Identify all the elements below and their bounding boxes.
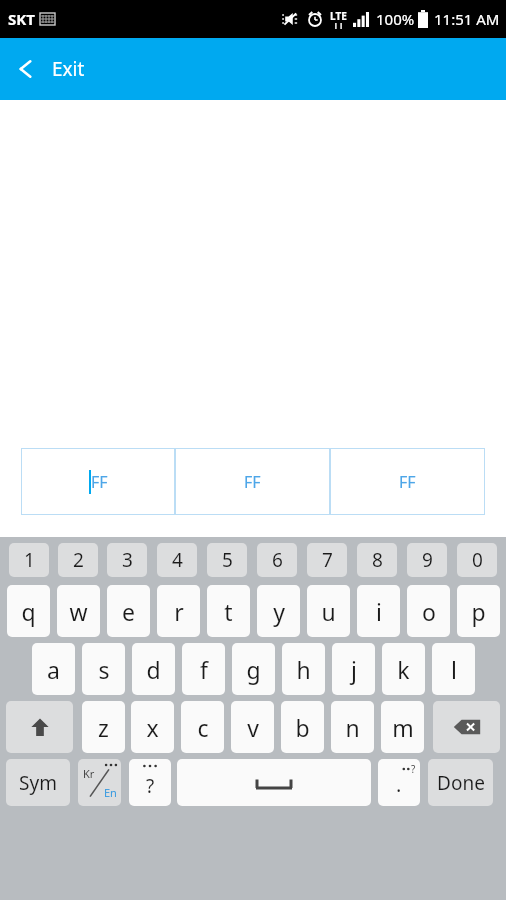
staticText: r: [174, 596, 184, 627]
staticText: FF: [399, 471, 416, 493]
staticText: x: [146, 712, 159, 743]
staticText: l: [451, 654, 457, 685]
staticText: p: [471, 596, 486, 627]
button[interactable]: p: [457, 585, 500, 637]
button[interactable]: FF: [21, 448, 175, 515]
staticText: o: [422, 596, 436, 627]
button[interactable]: 9: [407, 543, 447, 577]
staticText: LTE: [330, 9, 347, 23]
button[interactable]: l: [432, 643, 475, 695]
staticText: m: [392, 712, 414, 743]
button[interactable]: Change language: [78, 759, 121, 806]
staticText: 1: [24, 547, 35, 573]
button[interactable]: 5: [207, 543, 247, 577]
staticText: k: [397, 654, 410, 685]
staticText: .: [396, 771, 402, 798]
staticText: En: [104, 785, 117, 800]
staticText: 0: [472, 547, 483, 573]
button[interactable]: Backspace: [433, 701, 500, 753]
button[interactable]: f: [182, 643, 225, 695]
button[interactable]: Period: [378, 759, 420, 806]
staticText: a: [47, 654, 60, 685]
staticText: n: [345, 712, 360, 743]
staticText: h: [296, 654, 311, 685]
button[interactable]: q: [7, 585, 50, 637]
button[interactable]: Space: [177, 759, 371, 806]
staticText: FF: [244, 471, 261, 493]
button[interactable]: 1: [9, 543, 49, 577]
button[interactable]: u: [307, 585, 350, 637]
staticText: g: [246, 654, 261, 685]
staticText: d: [146, 654, 161, 685]
button[interactable]: 6: [257, 543, 297, 577]
button[interactable]: 3: [107, 543, 147, 577]
staticText: ?: [146, 773, 155, 799]
button[interactable]: FF: [330, 448, 485, 515]
button[interactable]: 0: [457, 543, 497, 577]
staticText: Exit: [52, 56, 85, 82]
button[interactable]: 8: [357, 543, 397, 577]
button[interactable]: 7: [307, 543, 347, 577]
staticText: s: [98, 654, 110, 685]
button[interactable]: i: [357, 585, 400, 637]
staticText: i: [376, 596, 382, 627]
button[interactable]: c: [181, 701, 224, 753]
staticText: t: [224, 596, 233, 627]
button[interactable]: t: [207, 585, 250, 637]
button[interactable]: z: [82, 701, 125, 753]
button[interactable]: s: [82, 643, 125, 695]
button[interactable]: m: [381, 701, 424, 753]
button[interactable]: k: [382, 643, 425, 695]
button[interactable]: n: [331, 701, 374, 753]
staticText: c: [197, 712, 209, 743]
staticText: e: [122, 596, 135, 627]
staticText: 3: [122, 547, 133, 573]
staticText: 11:51 AM: [434, 9, 500, 29]
button[interactable]: FF: [175, 448, 330, 515]
staticText: q: [21, 596, 36, 627]
staticText: 100%: [376, 9, 415, 29]
staticText: ?: [411, 762, 416, 776]
button[interactable]: Sym: [6, 759, 70, 806]
staticText: SKT: [8, 9, 35, 29]
staticText: 4: [172, 547, 183, 573]
staticText: Done: [437, 770, 485, 796]
button[interactable]: d: [132, 643, 175, 695]
staticText: Sym: [19, 770, 57, 796]
staticText: FF: [91, 471, 108, 493]
button[interactable]: g: [232, 643, 275, 695]
staticText: b: [295, 712, 310, 743]
other: Back: [14, 57, 38, 81]
button[interactable]: a: [32, 643, 75, 695]
staticText: w: [69, 596, 88, 627]
button[interactable]: h: [282, 643, 325, 695]
button[interactable]: o: [407, 585, 450, 637]
button[interactable]: x: [131, 701, 174, 753]
staticText: Kr: [83, 766, 95, 781]
button[interactable]: Question mark: [129, 759, 171, 806]
button[interactable]: 4: [157, 543, 197, 577]
staticText: v: [247, 712, 259, 743]
button[interactable]: j: [332, 643, 375, 695]
staticText: 7: [322, 547, 333, 573]
staticText: 6: [272, 547, 283, 573]
button[interactable]: Done: [428, 759, 493, 806]
button[interactable]: r: [157, 585, 200, 637]
button[interactable]: e: [107, 585, 150, 637]
button[interactable]: b: [281, 701, 324, 753]
button[interactable]: 2: [58, 543, 98, 577]
staticText: j: [351, 654, 357, 685]
button[interactable]: w: [57, 585, 100, 637]
button[interactable]: y: [257, 585, 300, 637]
staticText: f: [200, 654, 208, 685]
staticText: z: [98, 712, 109, 743]
staticText: 8: [372, 547, 383, 573]
staticText: u: [321, 596, 336, 627]
button[interactable]: Shift: [6, 701, 73, 753]
button[interactable]: v: [231, 701, 274, 753]
button[interactable]: Back: [0, 38, 506, 100]
staticText: y: [273, 596, 285, 627]
staticText: 9: [422, 547, 433, 573]
staticText: 2: [73, 547, 84, 573]
staticText: 5: [222, 547, 233, 573]
